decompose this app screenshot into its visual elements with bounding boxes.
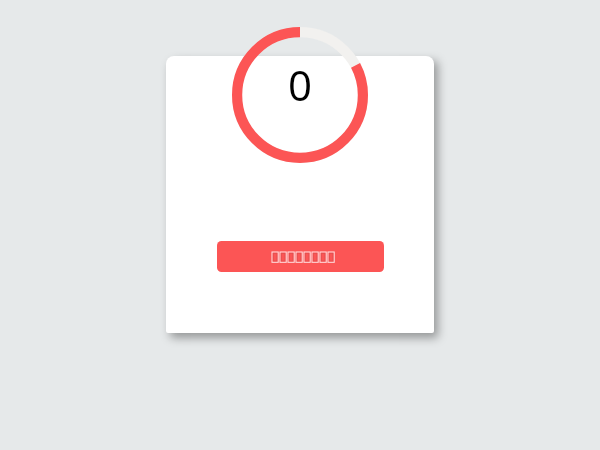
staticText: 0 xyxy=(270,56,330,113)
button[interactable]: 开始计时 / Start timer xyxy=(217,241,384,272)
button[interactable]: Counter progress ring, reset xyxy=(232,27,368,163)
